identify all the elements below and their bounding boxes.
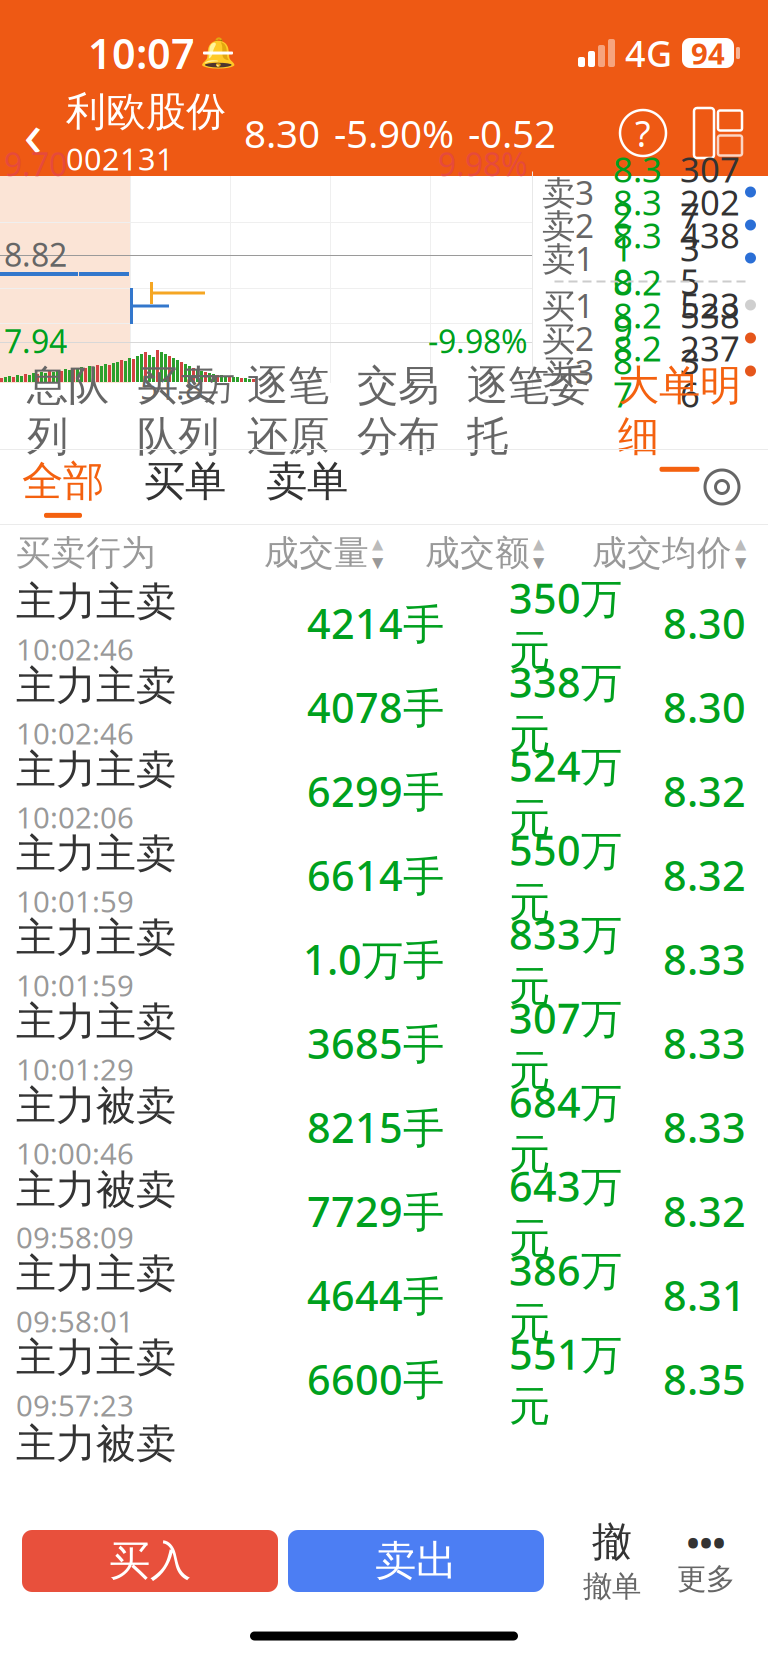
staticText: 550万元 <box>509 822 622 928</box>
staticText: 94 <box>691 33 725 72</box>
staticText: 全部 <box>22 456 104 507</box>
staticText: 10:07 <box>88 26 195 80</box>
button[interactable]: 主力主卖 <box>0 833 768 917</box>
staticText: 主力主卖 <box>16 913 176 963</box>
button[interactable]: 返回 <box>0 100 66 166</box>
staticText: 10:01:59 <box>16 966 134 1005</box>
button[interactable]: 息队列 <box>13 383 123 449</box>
staticText: 主力主卖 <box>16 1333 176 1383</box>
staticText: 8.27 <box>613 325 662 417</box>
staticText: 成交量 <box>264 532 369 574</box>
staticText: 2023 <box>680 179 740 271</box>
staticText: 息队列 <box>27 360 109 462</box>
button[interactable]: 卖单 <box>260 450 354 524</box>
staticText: ••• <box>686 1519 725 1565</box>
button[interactable]: 撤 <box>574 1528 650 1594</box>
staticText: 10:01:29 <box>16 1050 134 1089</box>
button[interactable]: 帮助 <box>620 110 666 156</box>
staticText: 8.82 <box>4 233 67 275</box>
staticText: 8.31 <box>663 1268 746 1322</box>
button[interactable]: 主力主卖 <box>0 1001 768 1085</box>
staticText: 主力被卖 <box>16 1081 176 1131</box>
staticText: 833万元 <box>509 906 622 1012</box>
button[interactable]: 主力主卖 <box>0 581 768 665</box>
staticText: 10:02:46 <box>16 714 134 753</box>
button[interactable]: 主力主卖 <box>0 1337 768 1421</box>
button[interactable]: 买入 <box>22 1530 278 1592</box>
button[interactable]: 成交额 <box>425 532 544 574</box>
staticText: 主力主卖 <box>16 577 176 627</box>
staticText: 买3 <box>542 349 594 393</box>
staticText: 主力主卖 <box>16 829 176 879</box>
staticText: 8.33 <box>663 932 746 986</box>
button[interactable]: 主力被卖 <box>0 1085 768 1169</box>
staticText: 3685手 <box>307 1016 444 1070</box>
staticText: 8.33 <box>663 1016 746 1070</box>
button[interactable]: 成交均价 <box>592 532 746 574</box>
staticText: -9.98% <box>428 319 528 362</box>
staticText: 8.30 <box>613 212 662 304</box>
staticText: 386万元 <box>509 1242 622 1348</box>
staticText: ▼ <box>372 554 383 571</box>
staticText: 4385 <box>680 212 740 304</box>
staticText: 2376 <box>680 325 740 417</box>
staticText: 6600手 <box>307 1352 444 1406</box>
button[interactable]: 主力主卖 <box>0 749 768 833</box>
staticText: 8.30 <box>244 107 320 159</box>
staticText: 利欧股份 <box>66 87 226 136</box>
button[interactable]: 大单明细 <box>604 383 755 449</box>
button[interactable]: 逐笔委托 <box>453 383 604 449</box>
staticText: 8.28 <box>613 292 662 384</box>
button[interactable]: 买单 <box>138 450 232 524</box>
staticText: -0.52 <box>468 107 556 159</box>
staticText: ▲ <box>533 535 544 552</box>
staticText: 主力被卖 <box>16 1165 176 1215</box>
staticText: 7729手 <box>307 1184 444 1238</box>
staticText: 主力主卖 <box>16 997 176 1047</box>
staticText: 买入 <box>109 1536 191 1586</box>
button[interactable]: 交易分布 <box>343 383 453 449</box>
staticText: 523 <box>680 282 740 328</box>
staticText: 307万元 <box>509 990 622 1096</box>
button[interactable]: 设置 <box>698 463 746 511</box>
staticText: 成交均价 <box>592 532 732 574</box>
button[interactable]: ••• <box>668 1528 744 1594</box>
staticText: 逐笔还原 <box>247 360 329 462</box>
staticText: 8.31 <box>613 179 662 271</box>
staticText: 10:02:46 <box>16 630 134 669</box>
button[interactable]: 主力被卖 <box>0 1169 768 1253</box>
staticText: 4644手 <box>307 1268 444 1322</box>
button[interactable]: 买卖队列 <box>123 383 233 449</box>
button[interactable]: 主力主卖 <box>0 1253 768 1337</box>
staticText: 主力主卖 <box>16 745 176 795</box>
staticText: 买卖队列 <box>137 360 219 462</box>
staticText: ▼ <box>533 554 544 571</box>
button[interactable]: 成交量 <box>264 532 383 574</box>
staticText: ‹ <box>23 92 42 174</box>
staticText: 买卖行为 <box>16 532 156 574</box>
staticText: ▲ <box>735 535 746 552</box>
staticText: 买单 <box>144 456 226 507</box>
button[interactable]: 切换布局 <box>692 105 744 161</box>
button[interactable]: 全部 <box>16 450 110 524</box>
staticText: 4214手 <box>307 596 444 650</box>
button[interactable]: 逐笔还原 <box>233 383 343 449</box>
staticText: 撤 <box>592 1517 632 1566</box>
staticText: 撤单 <box>583 1569 641 1605</box>
staticText: 主力被卖 <box>16 1419 176 1468</box>
button[interactable]: 卖出 <box>288 1530 544 1592</box>
staticText: 6299手 <box>307 764 444 818</box>
staticText: 338万元 <box>509 654 622 760</box>
staticText: 卖3 <box>542 170 594 214</box>
staticText: 9.70 <box>4 142 67 185</box>
staticText: 8.30 <box>663 596 746 650</box>
staticText: 4078手 <box>307 680 444 734</box>
staticText: 更多 <box>677 1561 735 1597</box>
staticText: 09:57:23 <box>16 1386 134 1425</box>
button[interactable]: 主力主卖 <box>0 917 768 1001</box>
staticText: 🔔 <box>199 36 236 70</box>
staticText: 5383 <box>680 292 740 384</box>
staticText: 684万元 <box>509 1074 622 1180</box>
button[interactable]: 主力主卖 <box>0 665 768 749</box>
staticText: 10:00:46 <box>16 1134 134 1173</box>
